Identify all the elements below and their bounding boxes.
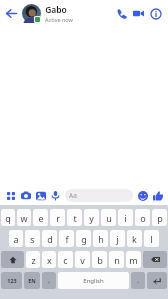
button[interactable]: n xyxy=(109,251,124,268)
button[interactable]: z xyxy=(26,251,40,268)
button[interactable]: More options xyxy=(3,188,18,203)
button[interactable]: Backspace xyxy=(143,251,167,268)
button[interactable]: . xyxy=(131,272,145,289)
staticText: Aa xyxy=(69,191,77,200)
staticText: l xyxy=(150,233,153,245)
staticText: 123 xyxy=(7,277,17,284)
button[interactable]: o xyxy=(135,209,150,226)
button[interactable]: , xyxy=(42,272,56,289)
button[interactable]: Voice message xyxy=(48,188,63,203)
button[interactable]: g xyxy=(76,230,91,247)
button[interactable]: Profile photo xyxy=(22,4,41,23)
staticText: Gabo xyxy=(45,4,67,16)
button[interactable]: Shift xyxy=(1,251,24,268)
staticText: EN xyxy=(28,277,36,284)
staticText: q xyxy=(5,212,11,224)
staticText: u xyxy=(106,212,112,224)
button[interactable]: p xyxy=(152,209,167,226)
staticText: r xyxy=(56,212,60,224)
button[interactable]: c xyxy=(58,251,73,268)
button[interactable]: y xyxy=(84,209,99,226)
button[interactable]: Enter xyxy=(147,272,167,289)
button[interactable]: u xyxy=(101,209,116,226)
staticText: z xyxy=(31,254,36,266)
staticText: y xyxy=(89,212,94,224)
staticText: a xyxy=(13,233,19,245)
button[interactable]: 123 xyxy=(1,272,22,289)
button[interactable]: w xyxy=(17,209,31,226)
button[interactable]: Back xyxy=(3,5,20,22)
button[interactable]: English xyxy=(58,272,129,289)
staticText: g xyxy=(81,233,87,245)
button[interactable]: Camera xyxy=(18,188,33,203)
staticText: v xyxy=(80,254,85,266)
staticText: Active now xyxy=(45,16,73,23)
staticText: b xyxy=(97,254,103,266)
button[interactable]: Video call xyxy=(130,5,147,22)
button[interactable]: i xyxy=(118,209,133,226)
button[interactable]: Voice call xyxy=(113,5,130,22)
button[interactable]: m xyxy=(126,251,141,268)
button[interactable]: q xyxy=(1,209,15,226)
staticText: d xyxy=(47,233,53,245)
button[interactable]: Aa xyxy=(65,189,133,202)
button[interactable]: v xyxy=(75,251,90,268)
staticText: i xyxy=(124,212,127,224)
button[interactable]: l xyxy=(144,230,159,247)
button[interactable]: d xyxy=(42,230,57,247)
staticText: English xyxy=(83,277,104,285)
staticText: . xyxy=(137,277,139,284)
staticText: j xyxy=(116,233,119,245)
button[interactable]: s xyxy=(25,230,40,247)
staticText: k xyxy=(132,233,137,245)
button[interactable]: Gabo xyxy=(45,4,113,23)
staticText: m xyxy=(129,254,138,266)
button[interactable]: Send like xyxy=(150,188,165,203)
staticText: x xyxy=(47,254,52,266)
staticText: f xyxy=(65,233,69,245)
staticText: p xyxy=(157,212,163,224)
button[interactable]: e xyxy=(33,209,48,226)
staticText: w xyxy=(20,212,28,224)
staticText: h xyxy=(98,233,104,245)
button[interactable]: Emoji xyxy=(135,188,150,203)
button[interactable]: r xyxy=(50,209,65,226)
staticText: c xyxy=(63,254,68,266)
staticText: s xyxy=(30,233,35,245)
button[interactable]: Conversation information xyxy=(147,5,164,22)
staticText: , xyxy=(48,277,50,284)
button[interactable]: b xyxy=(92,251,107,268)
button[interactable]: f xyxy=(59,230,74,247)
button[interactable]: a xyxy=(9,230,23,247)
button[interactable]: x xyxy=(42,251,56,268)
staticText: n xyxy=(114,254,120,266)
button[interactable]: EN xyxy=(24,272,40,289)
button[interactable]: h xyxy=(93,230,108,247)
staticText: o xyxy=(140,212,146,224)
button[interactable]: Photo gallery xyxy=(33,188,48,203)
staticText: e xyxy=(38,212,44,224)
staticText: t xyxy=(73,212,77,224)
button[interactable]: t xyxy=(67,209,82,226)
button[interactable]: j xyxy=(110,230,125,247)
button[interactable]: k xyxy=(127,230,142,247)
